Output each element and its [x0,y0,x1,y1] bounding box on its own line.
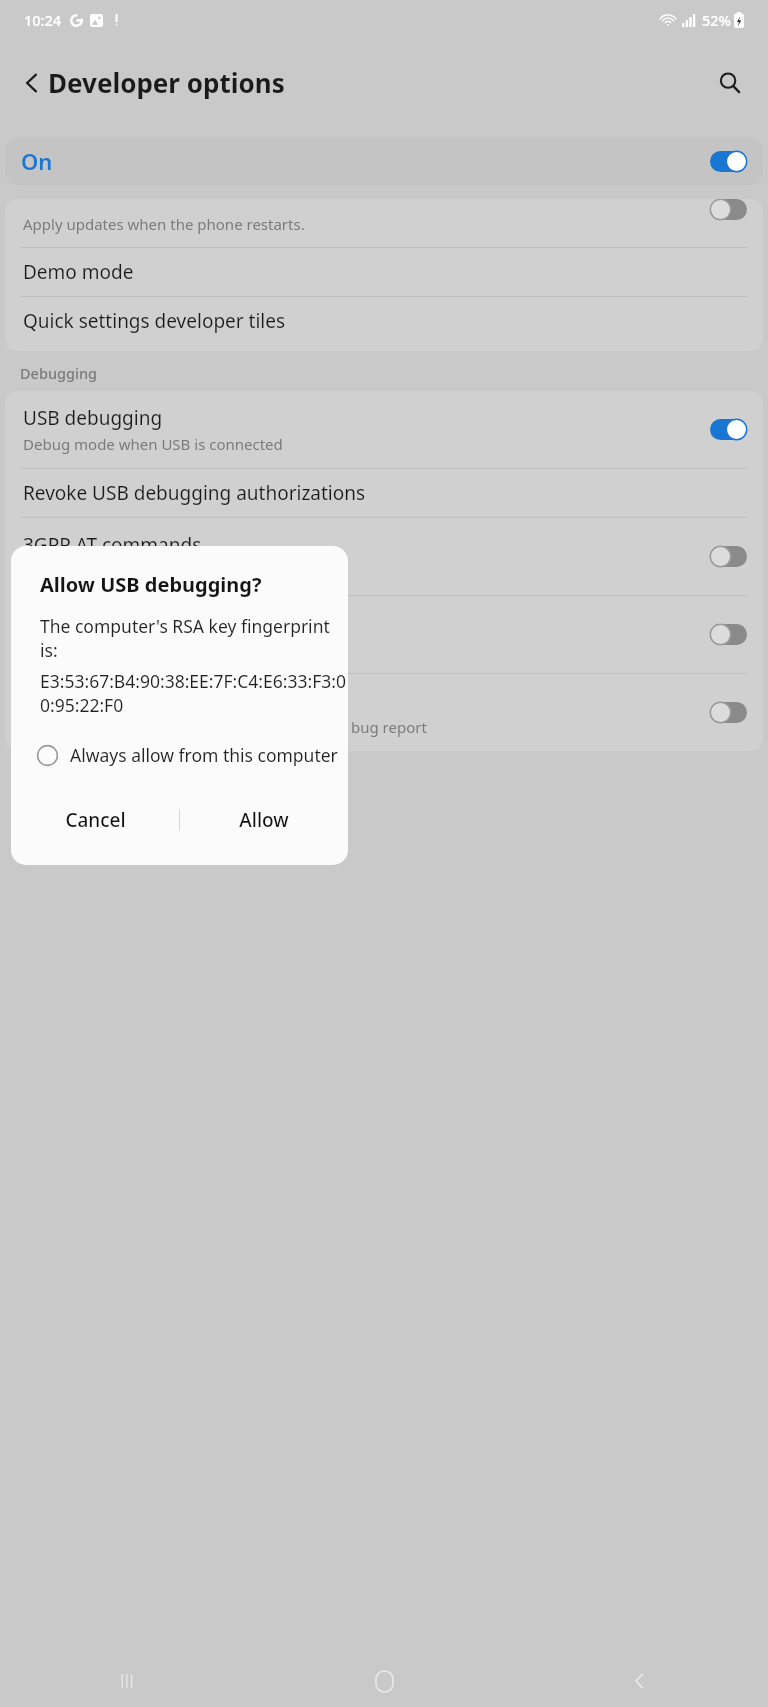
staticText: Wireless debugging [23,610,201,636]
staticText: USB debugging [23,405,163,431]
button[interactable]: Quick settings developer tiles [5,297,763,345]
button[interactable]: Toggle on [710,419,747,440]
staticText: Debugging [20,363,97,383]
button[interactable]: Toggle off [710,624,747,645]
button[interactable]: Allow [180,793,348,847]
staticText: Quick settings developer tiles [23,308,286,334]
staticText: Debug mode when USB is connected [23,434,283,454]
staticText: Developer options [48,65,285,100]
staticText: Apply updates when the phone restarts. [23,214,305,234]
button[interactable]: 3GPP AT commands [5,518,763,595]
staticText: Demo mode [23,259,134,285]
staticText: The computer's RSA key fingerprint is: [40,614,348,662]
staticText: Cancel [65,807,126,833]
button[interactable]: Toggle off [710,199,747,220]
staticText: Allow [239,807,289,833]
staticText: Revoke USB debugging authorizations [23,480,366,506]
button[interactable]: Revoke USB debugging authorizations [5,469,763,517]
staticText: Show a button in the power menu for taki… [23,717,427,737]
button[interactable]: Cancel [11,793,179,847]
staticText: 52% [702,10,731,30]
staticText: 10:24 [24,10,62,30]
staticText: Bug report shortcut [23,688,200,714]
staticText: Always allow from this computer [70,743,338,767]
button[interactable]: Toggle on [710,151,747,172]
button[interactable]: On [5,137,763,185]
staticText: Turn 3GPP AT commands on or off. [23,561,269,581]
staticText: Debug mode when Wi-Fi is connected [23,639,289,659]
staticText: On [21,146,53,176]
button[interactable]: Demo mode [5,248,763,296]
button[interactable]: Always allow from this computer [11,741,348,769]
staticText: 3GPP AT commands [23,532,202,558]
button[interactable]: Auto update system [5,199,763,247]
button[interactable]: Search [706,59,754,107]
button[interactable]: Toggle off [710,702,747,723]
staticText: E3:53:67:B4:90:38:EE:7F:C4:E6:33:F3:00:9… [40,669,348,717]
button[interactable]: Bug report shortcut [5,674,763,751]
button[interactable]: Toggle off [710,546,747,567]
button[interactable]: USB debugging [5,391,763,468]
staticText: Allow USB debugging? [40,571,262,598]
button[interactable]: Wireless debugging [5,596,763,673]
button[interactable]: Back [8,59,56,107]
